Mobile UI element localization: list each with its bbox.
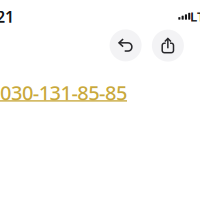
button[interactable]: Share [152, 30, 184, 62]
button[interactable]: 030-131-85-85 [0, 80, 127, 104]
staticText: 030-131-85-85 [0, 79, 127, 106]
staticText: 21 [0, 6, 14, 27]
button[interactable]: Undo [110, 29, 142, 61]
staticText: LTE [190, 7, 200, 25]
